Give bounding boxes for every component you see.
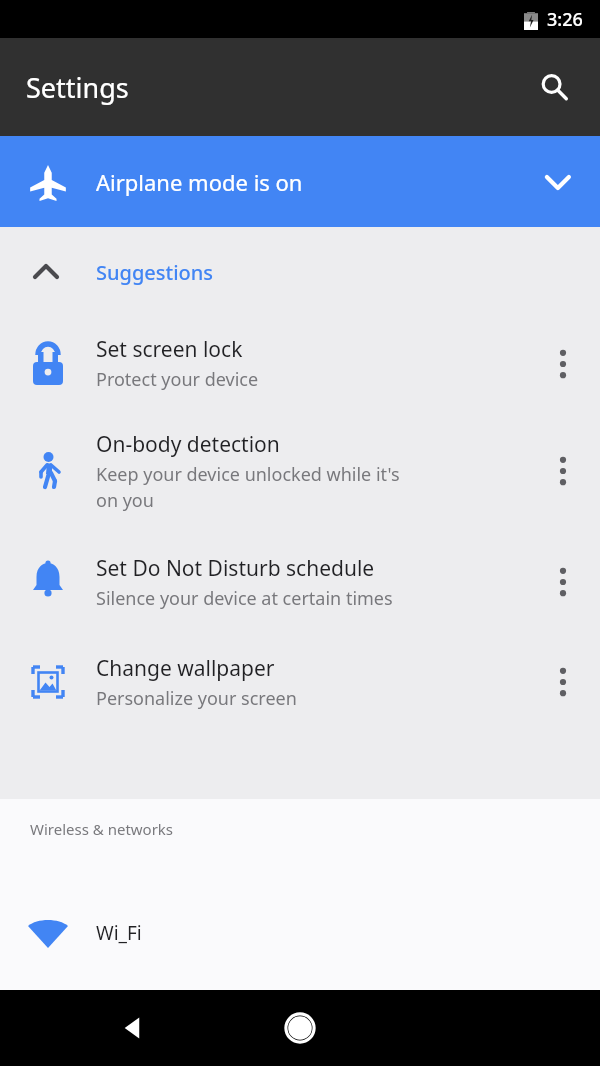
button[interactable]: Wi_Fi [0,895,600,971]
button[interactable]: Search [526,59,582,115]
button[interactable]: More options [526,632,600,732]
button[interactable]: More options [526,410,600,532]
staticText: Settings [26,69,129,106]
staticText: Silence your device at certain times [96,586,393,611]
staticText: Personalize your screen [96,686,297,711]
button[interactable]: Set screen lock [0,317,600,410]
staticText: Set screen lock [96,335,243,364]
staticText: Change wallpaper [96,654,275,683]
button[interactable]: Home [270,998,330,1058]
button[interactable]: On-body detection [0,410,600,532]
button[interactable]: Change wallpaper [0,632,600,732]
staticText: 3:26 [547,7,583,32]
staticText: Suggestions [96,259,214,286]
button[interactable]: More options [526,317,600,410]
button[interactable]: Airplane mode is on [0,136,600,227]
staticText: On-body detection [96,430,280,459]
button[interactable]: More options [526,532,600,632]
button[interactable]: Back [103,998,163,1058]
button[interactable]: Suggestions [0,227,600,317]
staticText: Airplane mode is on [96,167,303,197]
button[interactable]: Set Do Not Disturb schedule [0,532,600,632]
staticText: Keep your device unlocked while it's on … [96,462,400,513]
staticText: Protect your device [96,367,259,392]
staticText: Set Do Not Disturb schedule [96,554,375,583]
staticText: Wireless & networks [30,819,174,839]
staticText: Wi_Fi [96,920,142,946]
